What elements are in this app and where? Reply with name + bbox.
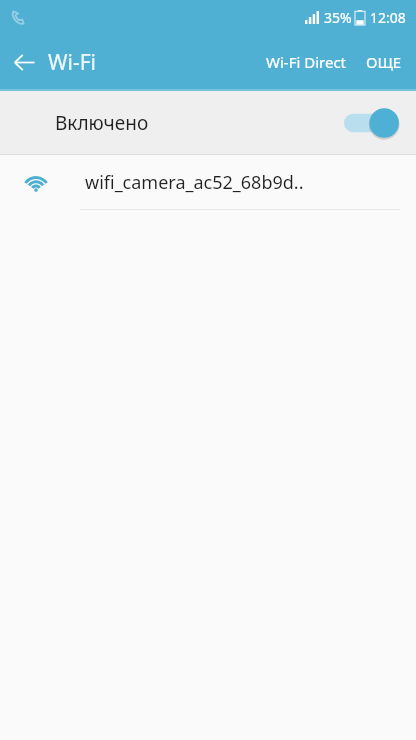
staticText: ОЩЕ	[366, 52, 402, 72]
button[interactable]: Wi-Fi Direct	[258, 42, 354, 82]
staticText: wifi_camera_ac52_68b9d..	[85, 170, 304, 195]
staticText: Wi-Fi Direct	[266, 52, 346, 72]
button[interactable]: ОЩЕ	[360, 42, 416, 82]
button[interactable]: wifi_camera_ac52_68b9d..	[0, 155, 416, 209]
staticText: Wi-Fi	[48, 48, 97, 77]
button[interactable]: Включено	[0, 91, 416, 154]
button[interactable]: Back	[0, 38, 48, 86]
staticText: 35%	[324, 8, 352, 27]
staticText: 12:08	[370, 8, 406, 27]
staticText: Включено	[55, 110, 149, 136]
